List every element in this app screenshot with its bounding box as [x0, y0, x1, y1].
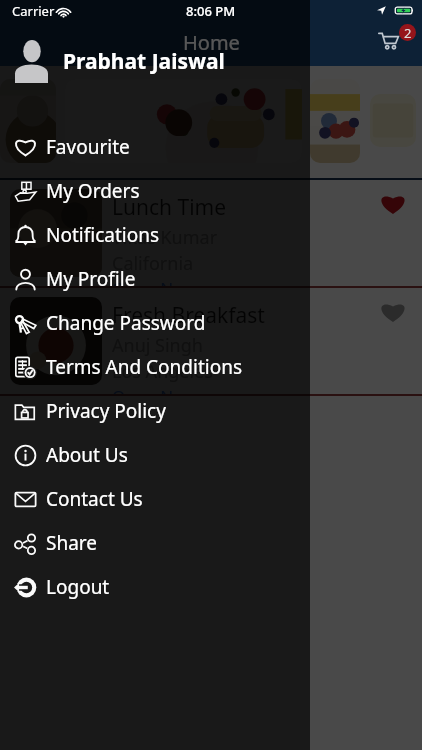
button[interactable]: Favourite: [0, 125, 310, 169]
button[interactable]: Logout: [0, 565, 310, 609]
staticText: Lunch Time: [112, 193, 227, 222]
button[interactable]: Change Password: [0, 301, 310, 345]
button[interactable]: Prabhat Jaiswal: [15, 40, 310, 83]
button[interactable]: Cart: [372, 24, 412, 64]
staticText: My Profile: [46, 266, 136, 292]
staticText: 2: [404, 24, 412, 41]
button[interactable]: My Orders: [0, 169, 310, 213]
staticText: Logout: [46, 574, 110, 600]
staticText: Home: [183, 29, 240, 56]
staticText: Favourite: [46, 134, 130, 160]
button[interactable]: Contact Us: [0, 477, 310, 521]
button[interactable]: Notifications: [0, 213, 310, 257]
staticText: Carrier: [12, 2, 55, 20]
staticText: Privacy Policy: [46, 398, 166, 424]
staticText: My Orders: [46, 178, 140, 204]
button[interactable]: My Profile: [0, 257, 310, 301]
staticText: Share: [46, 530, 98, 556]
button[interactable]: [0, 79, 56, 163]
button[interactable]: [370, 94, 416, 147]
button[interactable]: [310, 79, 360, 163]
staticText: Prabhat Jaiswal: [63, 47, 225, 76]
button[interactable]: [65, 79, 302, 163]
staticText: Notifications: [46, 222, 160, 248]
staticText: Open Now: [112, 385, 197, 394]
staticText: Vikas Kumar: [112, 225, 218, 250]
button[interactable]: About Us: [0, 433, 310, 477]
staticText: Fresh Breakfast: [112, 301, 265, 330]
staticText: Change Password: [46, 310, 206, 336]
staticText: California: [112, 251, 194, 276]
staticText: Open Now: [112, 277, 197, 286]
staticText: About Us: [46, 442, 128, 468]
staticText: Los Angeles: [112, 359, 213, 384]
button[interactable]: Lunch Time: [0, 180, 422, 286]
staticText: 8:06 PM: [186, 2, 236, 20]
button[interactable]: Privacy Policy: [0, 389, 310, 433]
button[interactable]: Fresh Breakfast: [0, 288, 422, 394]
button[interactable]: Terms And Conditions: [0, 345, 310, 389]
staticText: Contact Us: [46, 486, 143, 512]
staticText: Terms And Conditions: [46, 354, 243, 380]
button[interactable]: Share: [0, 521, 310, 565]
